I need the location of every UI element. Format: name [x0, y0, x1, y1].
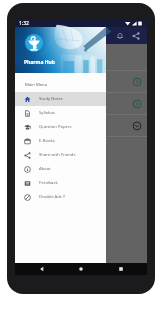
- button[interactable]: Feedback: [15, 176, 106, 190]
- staticText: Main Menu: [25, 82, 48, 88]
- staticText: 1:32: [19, 20, 29, 27]
- button[interactable]: Pharmacy Colleges in India: [15, 71, 147, 93]
- button[interactable]: Top Pharmacy Colleges: [15, 93, 147, 115]
- other: Open: [133, 100, 141, 108]
- other: Open: [133, 78, 141, 86]
- staticText: Pharmacy courses colleges: [21, 55, 75, 61]
- staticText: E-Books: [39, 138, 55, 144]
- staticText: Disable Ads !!: [39, 194, 66, 200]
- button[interactable]: Study Notes: [15, 92, 106, 106]
- button[interactable]: Question Papers: [15, 120, 106, 134]
- staticText: Study Notes: [39, 96, 63, 102]
- button[interactable]: E-Books: [15, 134, 106, 148]
- button[interactable]: Disable Ads !!: [15, 190, 106, 204]
- button[interactable]: Syllabus: [15, 106, 106, 120]
- button[interactable]: Back: [29, 264, 55, 274]
- button[interactable]: Share with Friends: [15, 148, 106, 162]
- button[interactable]: Home: [68, 264, 94, 274]
- other: Expand: [133, 122, 141, 130]
- staticText: Top Pharmacy Colleges: [21, 101, 67, 107]
- staticText: About: [39, 166, 51, 172]
- button[interactable]: Pharmacy Entrance Exams: [15, 115, 147, 137]
- staticText: Feedback: [39, 180, 58, 186]
- staticText: Pharma Hub: [24, 59, 55, 66]
- button[interactable]: Share: [131, 31, 141, 41]
- staticText: Share with Friends: [39, 152, 76, 158]
- staticText: Question Papers: [39, 124, 72, 130]
- staticText: Pharmacy Colleges in India: [21, 79, 75, 85]
- button[interactable]: About: [15, 162, 106, 176]
- button[interactable]: Notifications: [115, 31, 125, 41]
- button[interactable]: Recent apps: [108, 264, 134, 274]
- staticText: Pharmacy Entrance Exams: [21, 123, 73, 129]
- staticText: Syllabus: [39, 110, 56, 116]
